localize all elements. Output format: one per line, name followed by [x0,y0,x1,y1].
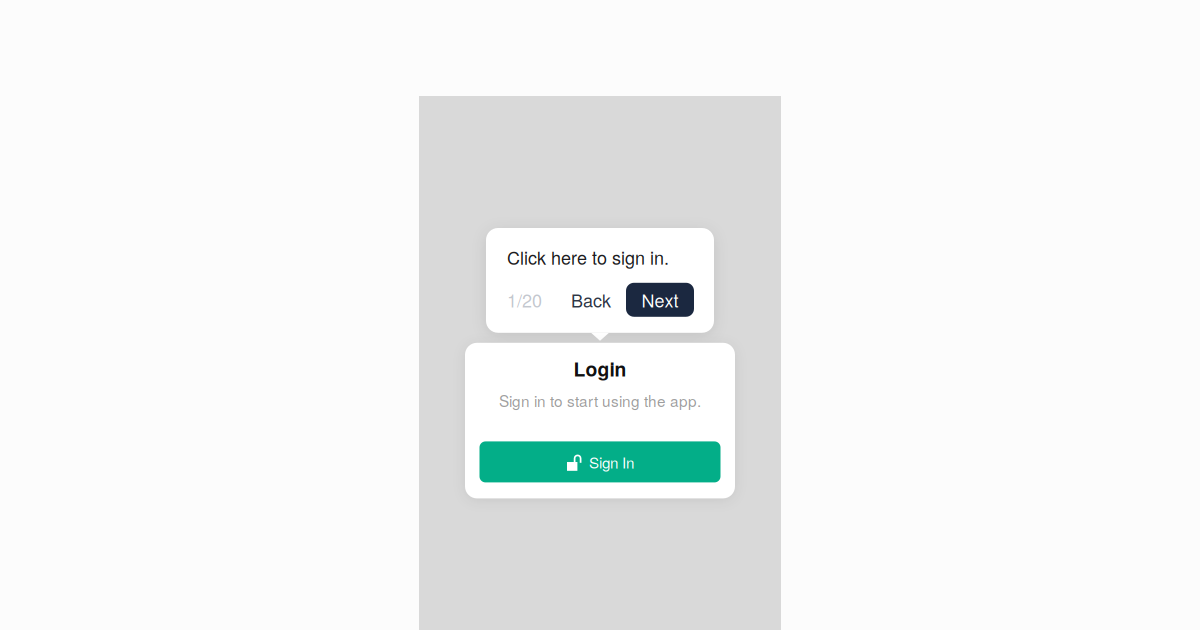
staticText: 1/20 [507,287,542,313]
staticText: Login [573,355,626,382]
button[interactable]: Sign In [479,441,720,482]
button[interactable]: Back [571,283,611,316]
button[interactable]: Next [626,283,694,317]
staticText: Click here to sign in. [507,244,669,270]
staticText: Sign In [589,451,634,473]
staticText: Next [641,287,678,313]
staticText: Back [571,287,611,313]
staticText: Sign in to start using the app. [499,389,701,411]
